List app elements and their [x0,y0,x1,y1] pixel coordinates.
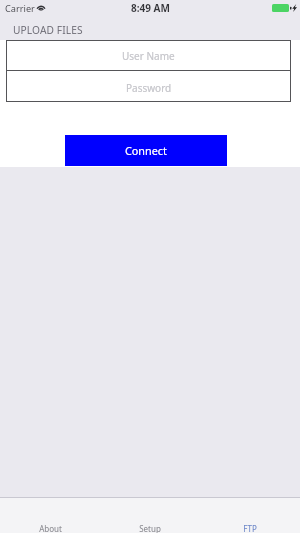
staticText: About [39,523,62,533]
staticText: User Name [122,49,175,63]
button[interactable]: Setup [100,498,200,533]
button[interactable]: FTP [200,498,300,533]
staticText: UPLOAD FILES [13,23,83,37]
staticText: Carrier [5,2,35,15]
staticText: Setup [139,523,161,533]
staticText: Password [126,81,172,95]
other: Wi-Fi [36,3,46,12]
other: Charging [292,4,297,12]
button[interactable]: User Name [6,40,291,70]
staticText: FTP [243,523,257,533]
other: Battery [272,4,291,12]
button[interactable]: Password [6,71,291,102]
staticText: 8:49 AM [131,1,170,15]
staticText: Connect [125,143,167,158]
button[interactable]: About [0,498,100,533]
button[interactable]: Connect [65,135,227,166]
